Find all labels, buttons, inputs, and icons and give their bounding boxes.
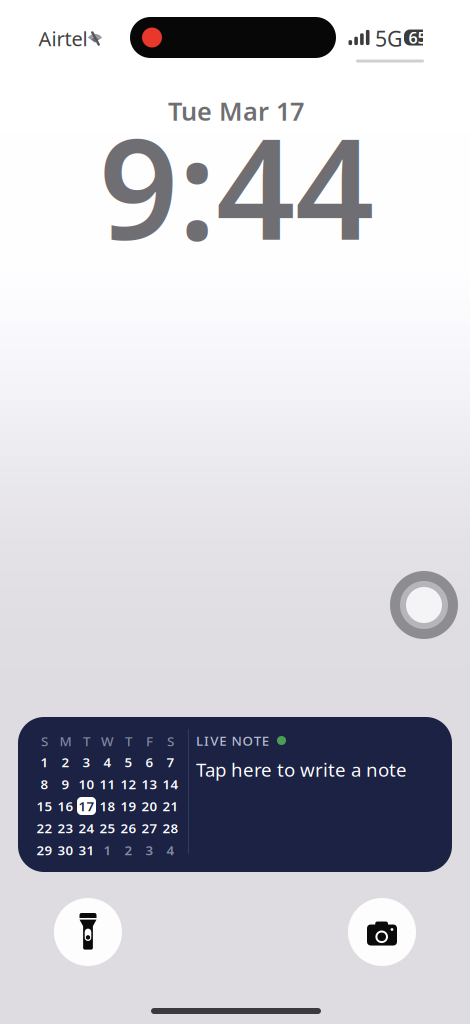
staticText: 25	[99, 819, 115, 837]
staticText: 7	[166, 753, 174, 771]
button[interactable]: Camera	[348, 898, 416, 966]
staticText: 21	[162, 797, 178, 815]
staticText: LIVE NOTE	[196, 732, 269, 749]
staticText: 30	[57, 841, 73, 859]
button[interactable]: Flashlight	[54, 898, 122, 966]
staticText: 16	[57, 797, 73, 815]
staticText: T	[125, 732, 132, 750]
staticText: 13	[141, 775, 157, 793]
staticText: 4	[103, 753, 111, 771]
staticText: 10	[78, 775, 94, 793]
staticText: 19	[120, 797, 136, 815]
staticText: 3	[82, 753, 90, 771]
staticText: 5	[124, 753, 132, 771]
staticText: 17	[78, 797, 94, 815]
staticText: 31	[78, 841, 94, 859]
staticText: 20	[141, 797, 157, 815]
staticText: 9:44	[99, 94, 374, 278]
staticText: 29	[36, 841, 52, 859]
button[interactable]: Calendar	[18, 717, 188, 872]
staticText: S	[167, 732, 174, 750]
staticText: Tap here to write a note	[196, 757, 407, 782]
staticText: M	[59, 732, 71, 750]
staticText: 2	[61, 753, 69, 771]
staticText: 2	[124, 841, 132, 859]
staticText: 12	[120, 775, 136, 793]
staticText: 1	[40, 753, 48, 771]
staticText: 1	[103, 841, 111, 859]
staticText: W	[101, 732, 114, 750]
staticText: F	[146, 732, 153, 750]
staticText: 14	[162, 775, 178, 793]
staticText: 27	[141, 819, 157, 837]
staticText: 15	[36, 797, 52, 815]
staticText: Airtel	[38, 25, 87, 52]
staticText: 65	[408, 27, 426, 48]
staticText: 11	[99, 775, 115, 793]
staticText: S	[41, 732, 48, 750]
staticText: 22	[36, 819, 52, 837]
staticText: 26	[120, 819, 136, 837]
staticText: 5G	[375, 24, 403, 53]
staticText: 23	[57, 819, 73, 837]
staticText: 6	[145, 753, 153, 771]
staticText: 3	[145, 841, 153, 859]
button[interactable]: Live Note	[189, 717, 443, 867]
staticText: 8	[40, 775, 48, 793]
staticText: T	[83, 732, 90, 750]
staticText: 28	[162, 819, 178, 837]
staticText: 4	[166, 841, 174, 859]
staticText: 9	[61, 775, 69, 793]
staticText: Tue Mar 17	[168, 94, 304, 128]
staticText: 24	[78, 819, 94, 837]
staticText: 18	[99, 797, 115, 815]
